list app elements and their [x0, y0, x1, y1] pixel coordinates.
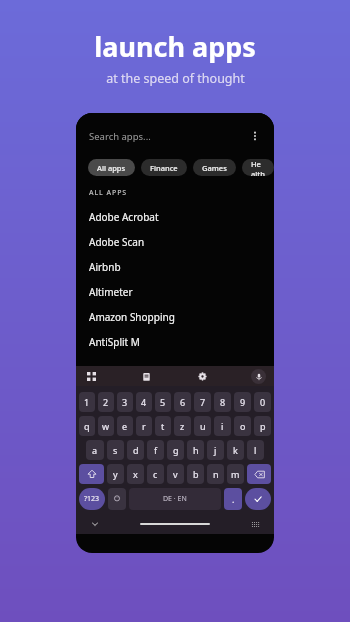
button[interactable]: Hide keyboard [88, 517, 102, 531]
button[interactable]: More options [245, 126, 265, 146]
button[interactable]: 4 [136, 392, 152, 412]
button[interactable]: 9 [234, 392, 251, 412]
button[interactable]: g [167, 440, 184, 460]
staticText: ?123 [84, 494, 100, 504]
button[interactable]: w [98, 416, 114, 436]
staticText: All apps [97, 163, 126, 173]
button[interactable]: Adobe Acrobat [76, 204, 274, 229]
button[interactable]: d [127, 440, 144, 460]
button[interactable]: n [207, 464, 224, 484]
button[interactable]: Altimeter [76, 279, 274, 304]
button[interactable]: l [247, 440, 264, 460]
staticText: 8 [220, 396, 226, 408]
button[interactable]: z [174, 416, 191, 436]
button[interactable]: All apps [88, 159, 135, 176]
button[interactable]: q [79, 416, 95, 436]
button[interactable]: Voice input [251, 369, 266, 384]
button[interactable]: AntiSplit M [76, 329, 274, 354]
staticText: o [240, 420, 246, 432]
button[interactable]: Emoji [108, 488, 126, 510]
button[interactable]: . [224, 488, 242, 510]
button[interactable]: x [127, 464, 144, 484]
staticText: u [200, 420, 206, 432]
button[interactable]: 0 [254, 392, 271, 412]
staticText: 9 [240, 396, 246, 408]
button[interactable]: f [147, 440, 164, 460]
staticText: h [193, 444, 199, 456]
button[interactable]: Search apps... [76, 113, 274, 159]
button[interactable]: c [147, 464, 164, 484]
button[interactable]: Clipboard [139, 369, 154, 384]
staticText: 0 [260, 396, 266, 408]
button[interactable]: 6 [174, 392, 191, 412]
staticText: 3 [122, 396, 128, 408]
button[interactable]: DE · EN [129, 488, 221, 510]
staticText: . [232, 493, 235, 505]
staticText: k [233, 444, 238, 456]
staticText: Amazon Shopping [89, 310, 175, 324]
button[interactable]: s [107, 440, 124, 460]
button[interactable]: j [207, 440, 224, 460]
staticText: g [173, 444, 179, 456]
staticText: Finance [150, 163, 178, 173]
button[interactable]: h [187, 440, 204, 460]
button[interactable]: 1 [79, 392, 95, 412]
staticText: Search apps... [89, 130, 151, 143]
button[interactable]: o [234, 416, 251, 436]
button[interactable]: v [167, 464, 184, 484]
button[interactable]: Amazon Shopping [76, 304, 274, 329]
staticText: 4 [141, 396, 147, 408]
button[interactable]: b [187, 464, 204, 484]
button[interactable]: Health [242, 159, 274, 176]
button[interactable]: u [194, 416, 211, 436]
button[interactable]: 3 [117, 392, 133, 412]
button[interactable]: r [136, 416, 152, 436]
staticText: e [122, 420, 128, 432]
button[interactable]: k [227, 440, 244, 460]
staticText: Altimeter [89, 285, 133, 299]
button[interactable]: m [227, 464, 244, 484]
button[interactable]: 7 [194, 392, 211, 412]
staticText: m [231, 468, 240, 480]
button[interactable]: a [86, 440, 104, 460]
staticText: 6 [180, 396, 186, 408]
button[interactable]: Enter [245, 488, 271, 510]
staticText: 5 [160, 396, 166, 408]
button[interactable]: 2 [98, 392, 114, 412]
staticText: r [142, 420, 146, 432]
button[interactable]: 5 [155, 392, 171, 412]
staticText: ALL APPS [89, 188, 128, 198]
button[interactable]: e [117, 416, 133, 436]
button[interactable]: t [155, 416, 171, 436]
staticText: f [154, 444, 158, 456]
button[interactable]: 8 [214, 392, 231, 412]
button[interactable]: y [107, 464, 124, 484]
staticText: 1 [84, 396, 90, 408]
staticText: z [180, 420, 185, 432]
staticText: Games [202, 163, 227, 173]
button[interactable]: ?123 [79, 488, 105, 510]
button[interactable]: Airbnb [76, 254, 274, 279]
staticText: AntiSplit M [89, 335, 140, 349]
staticText: n [213, 468, 219, 480]
button[interactable]: Finance [141, 159, 187, 176]
staticText: Adobe Scan [89, 235, 145, 249]
staticText: t [161, 420, 165, 432]
button[interactable]: Settings [195, 369, 210, 384]
button[interactable]: Switch keyboard [248, 517, 262, 531]
staticText: a [92, 444, 98, 456]
button[interactable]: Shift [79, 464, 104, 484]
button[interactable]: Games [193, 159, 236, 176]
button[interactable]: Backspace [247, 464, 271, 484]
button[interactable]: i [214, 416, 231, 436]
staticText: p [260, 420, 266, 432]
button[interactable]: p [254, 416, 271, 436]
staticText: Health [251, 159, 265, 176]
staticText: x [133, 468, 138, 480]
button[interactable]: Apps [84, 369, 99, 384]
staticText: c [153, 468, 158, 480]
button[interactable]: Adobe Scan [76, 229, 274, 254]
staticText: q [84, 420, 90, 432]
staticText: Airbnb [89, 260, 121, 274]
staticText: DE · EN [163, 494, 187, 504]
